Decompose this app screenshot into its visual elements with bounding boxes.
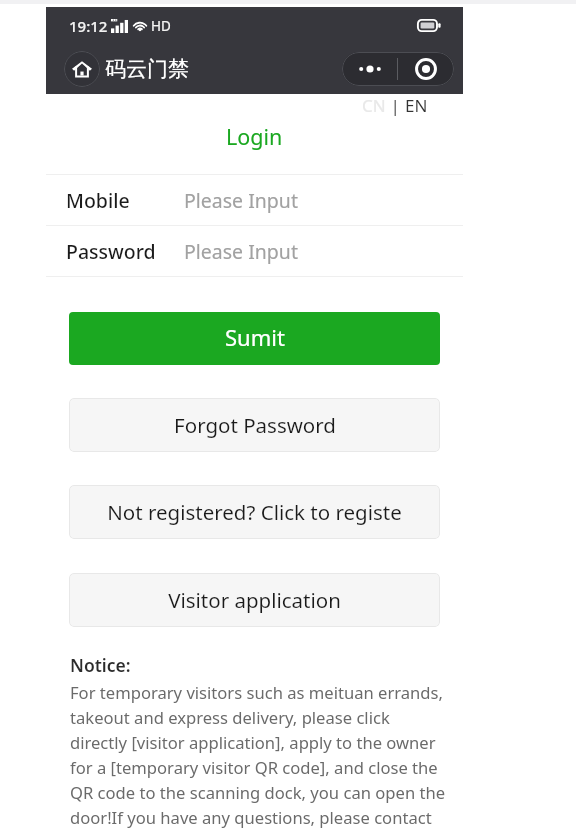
staticText: 码云门禁 xyxy=(105,56,189,82)
staticText: HD xyxy=(151,17,171,35)
staticText: Please Input xyxy=(184,187,298,214)
staticText: Please Input xyxy=(184,238,298,265)
button[interactable]: Forgot Password xyxy=(69,398,440,452)
button[interactable]: Not registered? Click to registe xyxy=(69,485,440,539)
staticText: Not registered? Click to registe xyxy=(107,498,402,526)
staticText: EN xyxy=(405,94,428,116)
button[interactable]: Sumit xyxy=(69,312,440,365)
button[interactable]: Visitor application xyxy=(69,573,440,627)
staticText: Login xyxy=(226,122,283,151)
staticText: Password xyxy=(66,238,156,265)
staticText: For temporary visitors such as meituan e… xyxy=(70,681,447,828)
button[interactable]: CN xyxy=(362,94,386,116)
staticText: 19:12 xyxy=(69,16,108,36)
staticText: CN xyxy=(362,94,386,116)
button[interactable]: Mobile xyxy=(46,175,463,225)
button[interactable]: Home xyxy=(64,51,100,87)
staticText: Mobile xyxy=(66,187,130,214)
staticText: | xyxy=(386,94,405,116)
staticText: Notice: xyxy=(70,653,131,677)
button[interactable]: More options xyxy=(342,52,397,86)
staticText: Sumit xyxy=(225,322,285,352)
staticText: Forgot Password xyxy=(174,411,336,439)
button[interactable]: Password xyxy=(46,226,463,276)
button[interactable]: EN xyxy=(405,94,428,116)
staticText: Visitor application xyxy=(168,586,341,614)
button[interactable]: Close app xyxy=(398,52,454,86)
